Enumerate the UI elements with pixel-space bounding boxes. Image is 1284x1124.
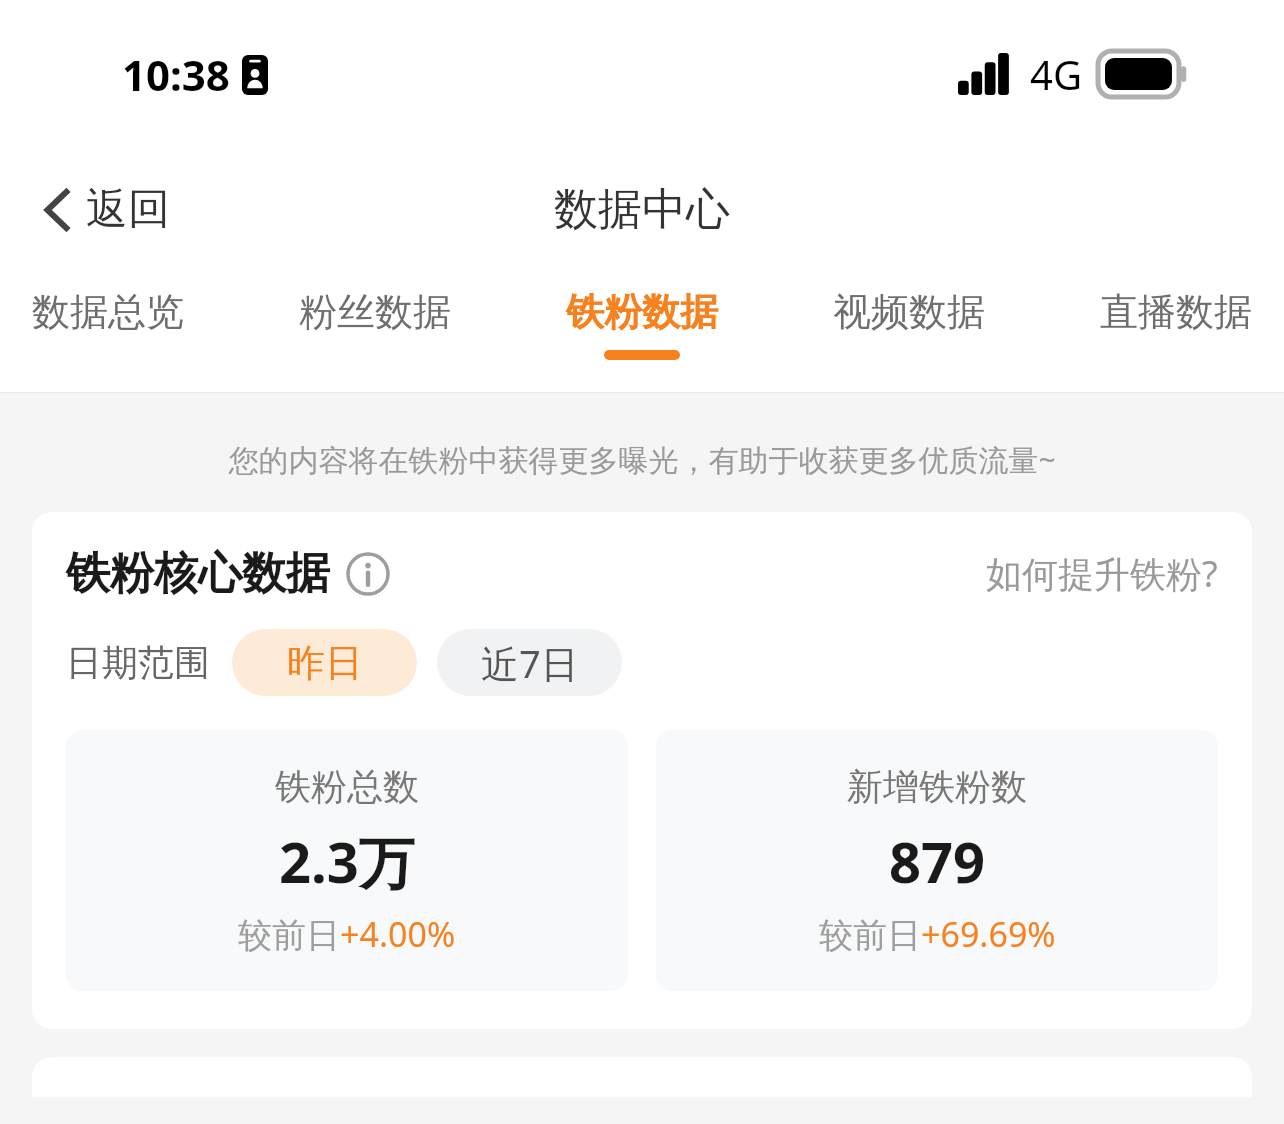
staticText: 直播数据	[1100, 288, 1252, 336]
staticText: 铁粉总数	[275, 764, 419, 809]
staticText: 10:38	[122, 46, 230, 103]
button[interactable]: 视频数据	[819, 270, 999, 360]
staticText: 数据总览	[32, 288, 184, 336]
staticText: 近7日	[481, 637, 579, 689]
staticText: 如何提升铁粉?	[986, 549, 1218, 598]
staticText: 879	[889, 823, 986, 899]
button[interactable]: 返回	[30, 175, 182, 244]
button[interactable]: 说明	[346, 552, 390, 596]
staticText: 数据中心	[554, 182, 730, 237]
button[interactable]: 数据总览	[18, 270, 198, 360]
button[interactable]: 铁粉数据	[552, 270, 732, 360]
staticText: 2.3万	[279, 823, 415, 899]
staticText: 您的内容将在铁粉中获得更多曝光，有助于收获更多优质流量~	[0, 439, 1284, 480]
staticText: 铁粉数据	[566, 288, 718, 336]
button[interactable]: 粉丝数据	[285, 270, 465, 360]
button[interactable]: 近7日	[437, 629, 622, 696]
button[interactable]: 昨日	[232, 629, 417, 696]
staticText: 4G	[1030, 47, 1082, 101]
staticText: 较前日+4.00%	[238, 911, 456, 957]
staticText: 铁粉核心数据	[66, 546, 330, 601]
staticText: 新增铁粉数	[847, 764, 1027, 809]
staticText: 较前日+69.69%	[819, 911, 1056, 957]
staticText: 返回	[86, 183, 170, 236]
button[interactable]: 铁粉总数	[66, 730, 628, 991]
button[interactable]: 新增铁粉数	[656, 730, 1218, 991]
button[interactable]: 直播数据	[1086, 270, 1266, 360]
staticText: 昨日	[287, 639, 363, 687]
staticText: 粉丝数据	[299, 288, 451, 336]
staticText: 日期范围	[66, 640, 210, 685]
button[interactable]: 如何提升铁粉?	[986, 549, 1218, 598]
staticText: 视频数据	[833, 288, 985, 336]
